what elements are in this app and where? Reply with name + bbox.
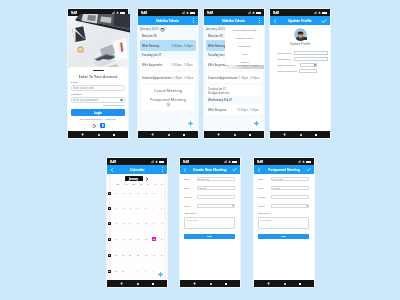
staticText: 17: [122, 238, 125, 241]
staticText: Update Name :: [277, 52, 293, 55]
button[interactable]: Share Meeting Page: [225, 25, 264, 33]
button[interactable]: Save: [232, 167, 237, 172]
staticText: 30 Jan 2023: [272, 178, 284, 181]
staticText: 15: [161, 222, 164, 225]
staticText: 9:41: [183, 160, 190, 164]
staticText: Login Now: [105, 118, 116, 121]
button[interactable]: Postponed Meeting: [142, 95, 194, 111]
staticText: 23: [115, 254, 118, 257]
button[interactable]: Add meeting: [251, 118, 261, 128]
staticText: Person :: [184, 196, 193, 199]
button[interactable]: [197, 195, 235, 199]
button[interactable]: Internal Appointments: [206, 72, 262, 83]
button[interactable]: Login: [71, 109, 125, 116]
staticText: 25: [129, 254, 132, 257]
button[interactable]: [300, 63, 317, 67]
button[interactable]: [271, 204, 309, 208]
button[interactable]: [294, 57, 328, 61]
button[interactable]: Internal Appointments: [140, 72, 196, 83]
staticText: Mon Jan 30: [208, 34, 223, 38]
staticText: 27: [145, 254, 148, 257]
button[interactable]: With Shaperia: [206, 104, 262, 115]
staticText: 7: [153, 207, 155, 210]
button[interactable]: Add: [258, 234, 309, 239]
button[interactable]: [197, 204, 235, 208]
staticText: Calendar: [130, 167, 145, 172]
button[interactable]: [271, 195, 309, 199]
staticText: 24: [122, 254, 125, 257]
button[interactable]: Sign in with Google: [91, 123, 96, 128]
staticText: Sa: [154, 183, 157, 186]
staticText: Tu: [125, 183, 128, 186]
staticText: 2: [137, 270, 139, 273]
staticText: 8: [161, 207, 163, 210]
staticText: 12:30pm - 1:30pm: [171, 63, 194, 67]
staticText: 30: [145, 192, 148, 195]
staticText: Postponed Meeting: [150, 97, 186, 102]
staticText: 9: [116, 222, 118, 225]
button[interactable]: With Augmedix: [140, 59, 196, 70]
staticText: 1: [130, 270, 132, 273]
staticText: 1:30pm - 3:30pm: [239, 76, 260, 80]
staticText: Room :: [258, 205, 266, 208]
staticText: 20: [145, 238, 148, 241]
staticText: E-mail: [71, 81, 78, 84]
staticText: Cancel Meeting: [154, 88, 183, 93]
button[interactable]: Save: [321, 18, 327, 24]
staticText: 4: [130, 207, 132, 210]
button[interactable]: Enter your password . . . .: [71, 97, 125, 103]
staticText: Enter To Your Account: [71, 74, 125, 79]
button[interactable]: 1:00 pm: [271, 186, 309, 190]
button[interactable]: Add setting...: [184, 217, 235, 229]
staticText: 26: [137, 254, 140, 257]
staticText: Room :: [184, 205, 192, 208]
button[interactable]: With Augmedix: [206, 59, 262, 70]
button[interactable]: Next month: [145, 177, 149, 181]
staticText: 4: [153, 270, 155, 273]
button[interactable]: [294, 51, 328, 55]
staticText: 31: [153, 192, 156, 195]
staticText: 5: [109, 192, 111, 195]
button[interactable]: Add meeting: [185, 118, 195, 128]
button[interactable]: Enter your e-mail: [71, 85, 125, 91]
button[interactable]: With Remmy: [140, 40, 196, 51]
button[interactable]: 1:00 pm: [197, 186, 235, 190]
button[interactable]: Update Profile: [225, 33, 264, 41]
button[interactable]: Cancel Meeting: [142, 85, 194, 95]
button[interactable]: Save: [306, 167, 311, 172]
button[interactable]: Menu: [192, 17, 195, 24]
staticText: 3: [145, 270, 147, 273]
button[interactable]: Change photo: [304, 37, 307, 40]
button[interactable]: Back: [110, 168, 114, 172]
button[interactable]: Add: [184, 234, 235, 239]
button[interactable]: Back: [257, 168, 261, 172]
button[interactable]: Tuesday Jan 31: [206, 85, 262, 96]
staticText: 1:30pm - 3:30pm: [173, 76, 194, 80]
button[interactable]: Add meeting: [155, 269, 165, 279]
staticText: 9:41: [207, 11, 214, 15]
staticText: January: [129, 177, 139, 180]
button[interactable]: [299, 69, 317, 73]
button[interactable]: Availability: [225, 41, 264, 49]
staticText: Login: [94, 111, 102, 115]
staticText: 1:00 pm: [198, 187, 206, 190]
staticText: 11: [129, 222, 132, 225]
button[interactable]: Add setting...: [258, 217, 309, 229]
staticText: Password: [71, 93, 82, 96]
button[interactable]: Login Now: [105, 118, 116, 121]
staticText: 16: [115, 238, 118, 241]
button[interactable]: Menu: [258, 17, 261, 24]
button[interactable]: January: [125, 176, 143, 181]
button[interactable]: Back: [183, 168, 187, 172]
button[interactable]: LogOut: [225, 57, 264, 65]
staticText: 8: [109, 238, 111, 241]
staticText: Date :: [258, 178, 265, 181]
button[interactable]: Sign in with Facebook: [100, 123, 105, 128]
button[interactable]: 30 Jan 2023: [197, 177, 235, 181]
button[interactable]: 30 Jan 2023: [271, 177, 309, 181]
button[interactable]: With Remmy: [206, 40, 262, 51]
staticText: 5: [137, 207, 139, 210]
button[interactable]: Menu: [161, 166, 164, 173]
button[interactable]: Back: [273, 19, 277, 23]
button[interactable]: Help: [225, 49, 264, 57]
